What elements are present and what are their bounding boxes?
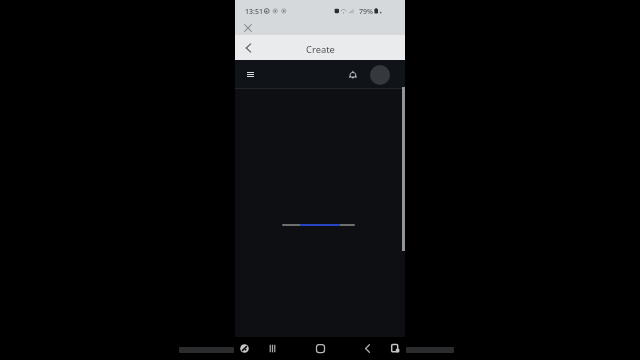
button[interactable]: Screenshot [388, 341, 403, 356]
staticText: 13:51 [245, 7, 263, 17]
button[interactable]: Close [240, 20, 256, 36]
button[interactable]: Back [360, 341, 375, 356]
staticText: 79% [359, 7, 373, 17]
button[interactable]: Menu [239, 66, 255, 82]
button[interactable]: Back [240, 39, 258, 57]
button[interactable]: Mute [237, 341, 252, 356]
button[interactable]: Notifications [345, 67, 361, 83]
button[interactable]: Recents [265, 341, 280, 356]
button[interactable]: Home [313, 341, 328, 356]
button[interactable]: Profile [370, 65, 390, 85]
staticText: Create [306, 43, 335, 56]
